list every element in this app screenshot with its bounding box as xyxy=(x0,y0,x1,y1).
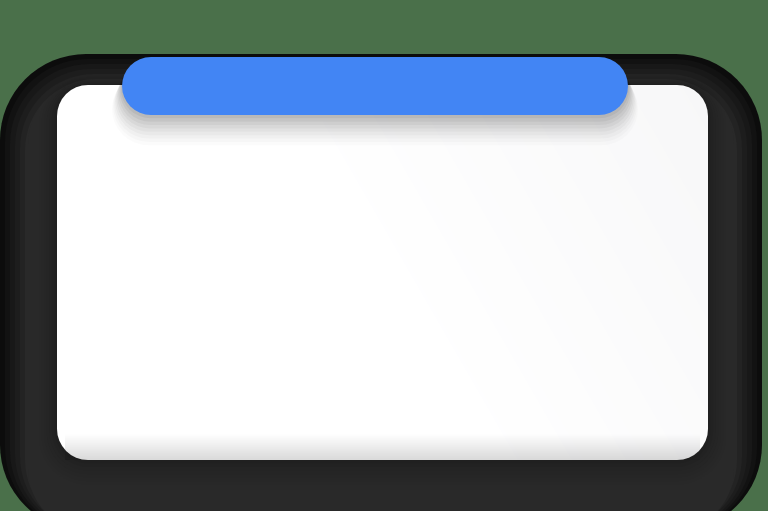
button[interactable]: Header xyxy=(0,0,768,511)
